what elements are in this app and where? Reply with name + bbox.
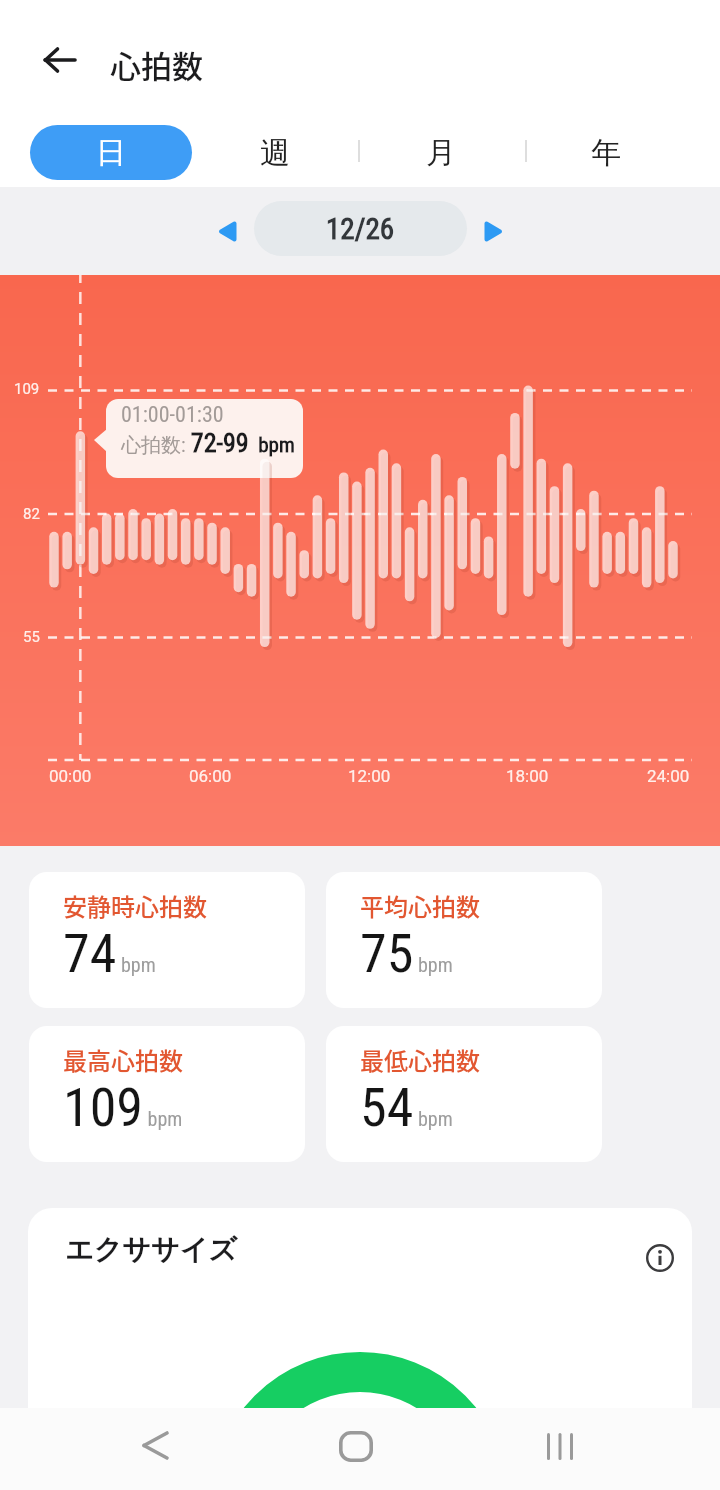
staticText: 年 — [591, 134, 621, 172]
staticText: 最高心拍数 — [63, 1042, 183, 1077]
button[interactable]: 月 — [381, 125, 501, 180]
staticText: 55 — [23, 628, 40, 646]
staticText: 心拍数 — [110, 42, 203, 87]
button[interactable] — [116, 1408, 196, 1490]
button[interactable] — [520, 1408, 600, 1490]
staticText: 月 — [426, 134, 456, 172]
staticText: 54 bpm — [360, 1076, 453, 1139]
staticText: 日 — [96, 134, 126, 172]
staticText: 週 — [260, 134, 290, 172]
staticText: 安静時心拍数 — [63, 888, 207, 923]
button[interactable]: 日 — [30, 125, 192, 180]
staticText: 75 bpm — [360, 922, 453, 985]
staticText: 82 — [23, 505, 40, 523]
staticText: 18:00 — [506, 766, 549, 786]
button[interactable] — [632, 1230, 688, 1286]
staticText: 01:00-01:30 — [121, 402, 224, 428]
button[interactable]: 週 — [215, 125, 335, 180]
button[interactable]: 最低心拍数 — [326, 1026, 602, 1162]
button[interactable]: 12/26 — [254, 201, 467, 256]
staticText: 最低心拍数 — [360, 1042, 480, 1077]
staticText: 12:00 — [348, 766, 391, 786]
staticText: エクササイズ — [65, 1232, 237, 1267]
button[interactable] — [316, 1408, 396, 1490]
staticText: 06:00 — [189, 766, 232, 786]
button[interactable] — [206, 202, 248, 260]
staticText: 心拍数: 72-99 bpm — [121, 428, 295, 458]
staticText: 24:00 — [647, 766, 690, 786]
staticText: 00:00 — [49, 766, 92, 786]
button[interactable]: 安静時心拍数 — [29, 872, 305, 1008]
button[interactable]: 最高心拍数 — [29, 1026, 305, 1162]
button[interactable] — [36, 45, 84, 75]
staticText: 109 bpm — [63, 1076, 183, 1139]
button[interactable]: エクササイズ — [28, 1208, 692, 1490]
staticText: 109 — [14, 380, 40, 398]
button[interactable] — [472, 202, 514, 260]
button[interactable]: 年 — [546, 125, 666, 180]
button[interactable]: 平均心拍数 — [326, 872, 602, 1008]
staticText: 74 bpm — [63, 922, 156, 985]
staticText: 12/26 — [326, 212, 395, 246]
staticText: 平均心拍数 — [360, 888, 480, 923]
